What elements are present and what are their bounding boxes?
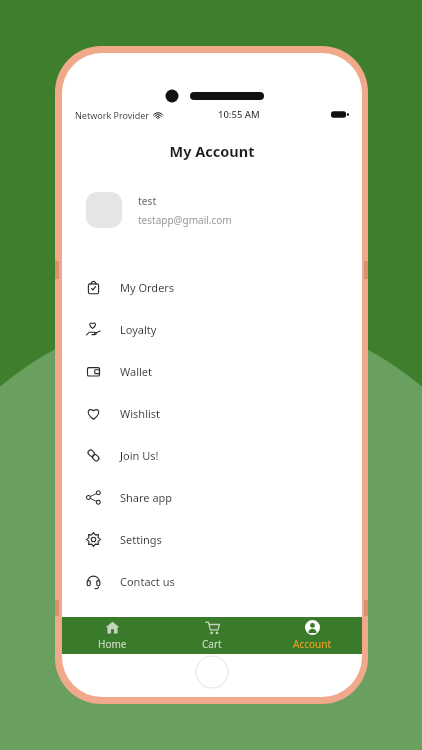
staticText: Account	[293, 637, 332, 651]
staticText: Wallet	[120, 364, 153, 379]
button[interactable]: Settings	[62, 518, 362, 560]
button[interactable]: Share app	[62, 476, 362, 518]
button[interactable]: Loyalty	[62, 308, 362, 350]
button[interactable]: Contact us	[62, 560, 362, 602]
button[interactable]: Home	[62, 617, 162, 654]
staticText: Contact us	[120, 574, 175, 589]
staticText: My Orders	[120, 280, 175, 295]
staticText: Join Us!	[120, 448, 159, 463]
staticText: Loyalty	[120, 322, 157, 337]
button[interactable]: Wallet	[62, 350, 362, 392]
button[interactable]: test	[86, 192, 362, 228]
staticText: Share app	[120, 490, 173, 505]
button[interactable]: Account	[262, 617, 362, 654]
staticText: Network Provider	[75, 109, 150, 121]
button[interactable]: Join Us!	[62, 434, 362, 476]
staticText: Wishlist	[120, 406, 161, 421]
button[interactable]: Cart	[162, 617, 262, 654]
button[interactable]: My Orders	[62, 266, 362, 308]
staticText: Home	[98, 637, 127, 651]
staticText: test	[138, 194, 157, 208]
staticText: testapp@gmail.com	[138, 213, 232, 227]
staticText: 10:55 AM	[218, 108, 260, 121]
staticText: Cart	[202, 637, 222, 651]
button[interactable]: Wishlist	[62, 392, 362, 434]
staticText: Settings	[120, 532, 162, 547]
staticText: My Account	[62, 141, 362, 161]
